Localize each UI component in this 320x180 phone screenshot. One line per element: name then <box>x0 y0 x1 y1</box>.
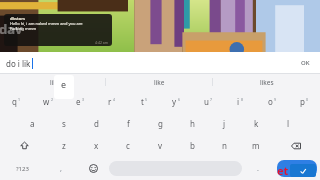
staticText: g <box>158 118 163 129</box>
staticText: 6 <box>178 97 181 102</box>
button[interactable]: y <box>160 90 192 112</box>
staticText: v <box>158 140 163 151</box>
staticText: do i lik <box>6 58 31 69</box>
staticText: z <box>62 140 66 151</box>
staticText: , <box>60 164 62 174</box>
button[interactable]: v <box>144 134 176 157</box>
button[interactable]: l <box>272 112 304 134</box>
staticText: lik <box>50 78 57 87</box>
staticText: a <box>30 118 35 129</box>
staticText: likes <box>260 78 274 87</box>
button[interactable]: g <box>144 112 176 134</box>
staticText: et <box>277 163 289 178</box>
staticText: k <box>254 118 259 129</box>
staticText: fucking mmm <box>10 26 37 31</box>
button[interactable]: b <box>176 134 208 157</box>
button[interactable]: x <box>80 134 112 157</box>
button[interactable]: e <box>64 90 96 112</box>
button[interactable]: n <box>208 134 240 157</box>
staticText: 5 <box>145 97 148 102</box>
staticText: x <box>94 140 99 151</box>
staticText: f <box>127 118 130 129</box>
button[interactable]: e <box>54 75 74 99</box>
staticText: dav <box>0 20 23 38</box>
staticText: e <box>76 96 81 107</box>
button[interactable]: c <box>112 134 144 157</box>
staticText: j <box>223 118 226 129</box>
staticText: i <box>237 96 240 107</box>
button[interactable]: do i lik <box>0 52 320 74</box>
staticText: Hello hi, i am naked mmm and you are <box>10 21 83 26</box>
staticText: 4 <box>113 97 116 102</box>
button[interactable]: t <box>128 90 160 112</box>
button[interactable]: m <box>240 134 272 157</box>
button[interactable]: o <box>256 90 288 112</box>
button[interactable]: a <box>16 112 48 134</box>
staticText: u <box>204 96 209 107</box>
staticText: o <box>268 96 273 107</box>
button[interactable]: j <box>208 112 240 134</box>
staticText: t <box>141 96 144 107</box>
staticText: 7 <box>210 97 213 102</box>
staticText: 0 <box>306 97 309 102</box>
staticText: like <box>154 78 165 87</box>
staticText: d <box>94 118 99 129</box>
staticText: 4:42 am <box>95 40 109 45</box>
button[interactable]: OK <box>297 57 314 69</box>
staticText: w <box>43 96 50 107</box>
staticText: y <box>172 96 177 107</box>
button[interactable]: ?123 <box>0 157 45 180</box>
staticText: e <box>61 78 67 90</box>
button[interactable]: u <box>192 90 224 112</box>
button[interactable]: i <box>224 90 256 112</box>
staticText: h <box>190 118 195 129</box>
button[interactable]: lik <box>0 74 106 90</box>
button[interactable]: p <box>288 90 320 112</box>
button[interactable]: likes <box>213 74 320 90</box>
button[interactable]: Emoji <box>77 157 109 180</box>
staticText: 3 <box>82 97 85 102</box>
button[interactable]: Backspace <box>272 134 320 157</box>
staticText: s <box>62 118 66 129</box>
button[interactable]: like <box>106 74 213 90</box>
button[interactable]: d <box>80 112 112 134</box>
button[interactable]: r <box>96 90 128 112</box>
staticText: . <box>257 164 259 174</box>
staticText: OK <box>301 59 310 67</box>
button[interactable]: Enter <box>277 160 317 177</box>
staticText: l <box>287 118 290 129</box>
staticText: 2 <box>51 97 54 102</box>
button[interactable]: f <box>112 112 144 134</box>
staticText: dbstars <box>10 16 25 21</box>
staticText: q <box>12 96 17 107</box>
staticText: p <box>300 96 305 107</box>
staticText: 1 <box>18 97 21 102</box>
staticText: 8 <box>241 97 244 102</box>
button[interactable]: z <box>48 134 80 157</box>
button[interactable]: h <box>176 112 208 134</box>
staticText: c <box>126 140 130 151</box>
staticText: m <box>252 140 260 151</box>
button[interactable]: k <box>240 112 272 134</box>
button[interactable]: w <box>32 90 64 112</box>
button[interactable]: s <box>48 112 80 134</box>
staticText: b <box>190 140 195 151</box>
staticText: ?123 <box>16 165 29 173</box>
staticText: 9 <box>274 97 277 102</box>
button[interactable]: q <box>0 90 32 112</box>
button[interactable]: dbstars <box>4 14 112 46</box>
staticText: n <box>222 140 227 151</box>
staticText: r <box>108 96 112 107</box>
button[interactable]: Shift <box>0 134 48 157</box>
